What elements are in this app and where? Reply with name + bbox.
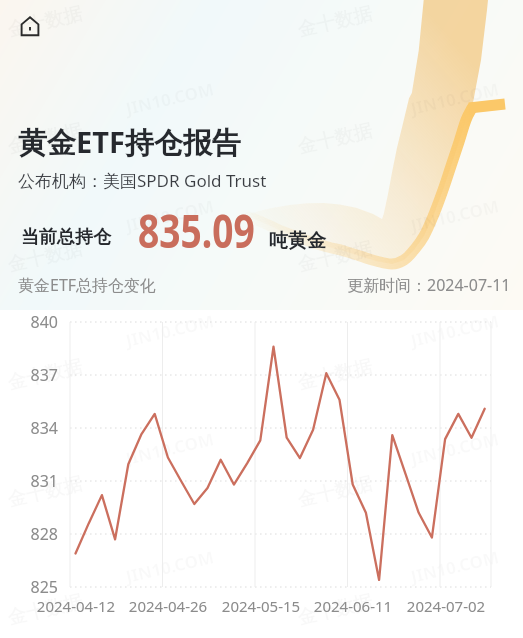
staticText: 828 (24, 523, 58, 545)
staticText: JIN10.COM (409, 77, 501, 120)
staticText: 黄金ETF持仓报告 (18, 122, 241, 162)
staticText: 金十数据 (295, 590, 375, 630)
staticText: 金十数据 (5, 590, 85, 630)
staticText: JIN10.COM (124, 309, 216, 352)
staticText: 2024-05-15 (211, 596, 311, 616)
staticText: 当前总持仓 (21, 226, 111, 249)
staticText: JIN10.COM (409, 309, 501, 352)
staticText: 吨黄金 (269, 229, 326, 253)
staticText: 831 (24, 470, 58, 492)
staticText: 金十数据 (295, 237, 375, 277)
staticText: JIN10.COM (124, 545, 216, 588)
staticText: 更新时间：2024-07-11 (347, 274, 511, 296)
staticText: 金十数据 (5, 355, 85, 395)
staticText: 金十数据 (5, 237, 85, 277)
staticText: JIN10.COM (124, 427, 216, 470)
staticText: 金十数据 (5, 472, 85, 512)
staticText: 2024-04-12 (26, 596, 126, 616)
staticText: 公布机构：美国SPDR Gold Trust (18, 169, 267, 192)
staticText: 2024-07-02 (396, 596, 496, 616)
staticText: 840 (24, 311, 58, 333)
staticText: JIN10.COM (409, 427, 501, 470)
staticText: JIN10.COM (409, 194, 501, 237)
staticText: 金十数据 (5, 2, 85, 42)
staticText: 金十数据 (295, 472, 375, 512)
staticText: 834 (24, 417, 58, 439)
staticText: 835.09 (138, 198, 255, 262)
staticText: 837 (24, 364, 58, 386)
staticText: 黄金ETF总持仓变化 (18, 274, 157, 296)
staticText: JIN10.COM (124, 194, 216, 237)
staticText: 2024-04-26 (118, 596, 218, 616)
staticText: 金十数据 (5, 119, 85, 159)
staticText: 825 (24, 576, 58, 598)
staticText: 金十数据 (295, 355, 375, 395)
button[interactable]: Home (12, 8, 48, 44)
staticText: 2024-06-11 (303, 596, 403, 616)
